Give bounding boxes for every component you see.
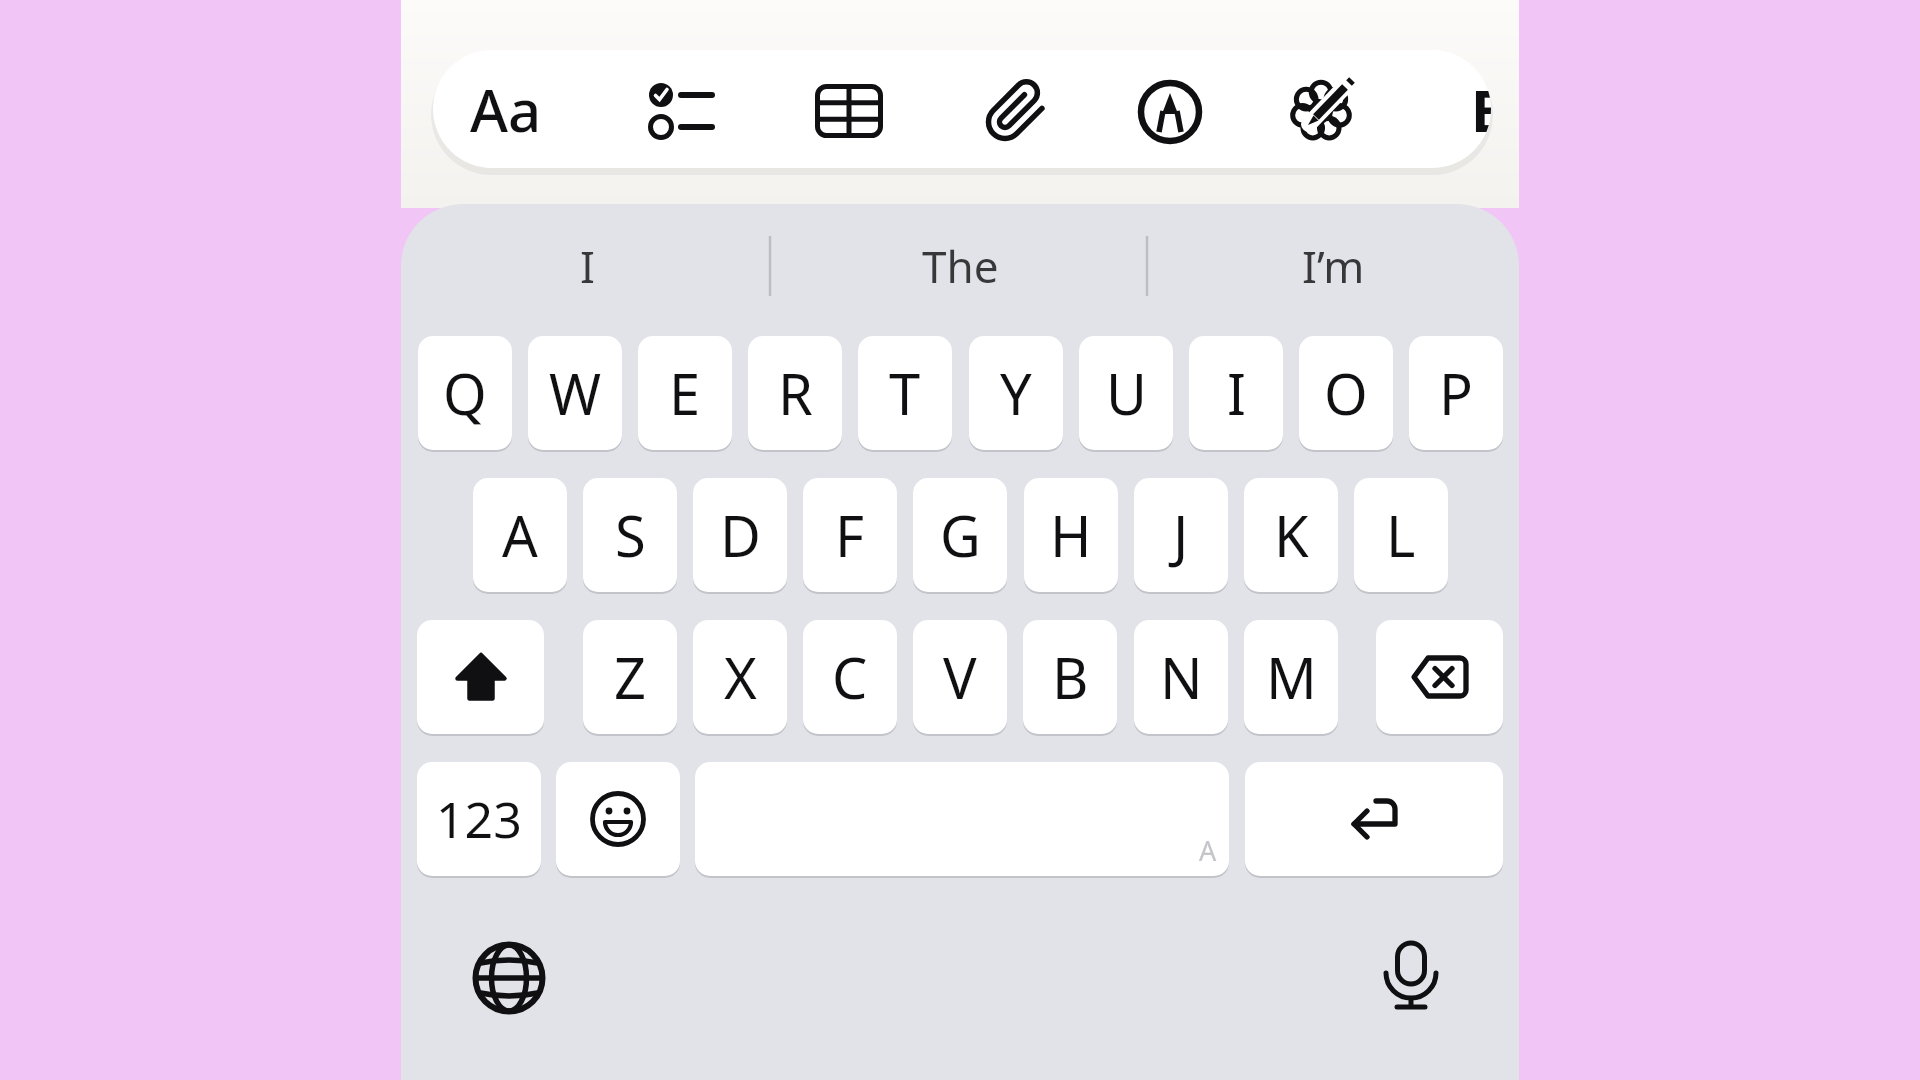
button[interactable] [1245, 762, 1503, 876]
staticText: O [1324, 355, 1368, 431]
staticText: A [502, 497, 538, 573]
button[interactable]: H [1024, 478, 1118, 592]
button[interactable]: E [638, 336, 732, 450]
staticText: C [832, 639, 868, 715]
button[interactable]: I [401, 224, 773, 308]
button[interactable] [1376, 620, 1503, 734]
button[interactable]: N [1134, 620, 1228, 734]
staticText: K [1274, 497, 1309, 573]
button[interactable] [417, 620, 544, 734]
button[interactable]: X [693, 620, 787, 734]
button[interactable]: I [1189, 336, 1283, 450]
button[interactable]: D [693, 478, 787, 592]
button[interactable]: B [1023, 620, 1117, 734]
staticText: X [724, 639, 757, 715]
staticText: T [889, 355, 921, 431]
staticText: I [580, 236, 595, 296]
button[interactable]: G [913, 478, 1007, 592]
button[interactable]: L [1354, 478, 1448, 592]
button[interactable]: C [803, 620, 897, 734]
button[interactable] [645, 80, 717, 142]
staticText: R [778, 355, 813, 431]
button[interactable]: 123 [417, 762, 541, 876]
staticText: J [1173, 497, 1189, 573]
button[interactable]: W [528, 336, 622, 450]
button[interactable] [983, 78, 1049, 144]
button[interactable]: U [1079, 336, 1173, 450]
staticText: U [1106, 355, 1147, 431]
staticText: B [1052, 639, 1089, 715]
staticText: H [1050, 497, 1092, 573]
staticText: S [615, 497, 646, 573]
staticText: D [720, 497, 761, 573]
staticText: Z [614, 639, 647, 715]
button[interactable] [695, 762, 1229, 876]
button[interactable]: Aa [433, 50, 1491, 168]
staticText: F [835, 497, 865, 573]
staticText: I’m [1302, 236, 1365, 296]
staticText: I [1227, 355, 1246, 431]
staticText: 123 [436, 785, 522, 853]
button[interactable]: O [1299, 336, 1393, 450]
staticText: The [922, 236, 999, 296]
button[interactable] [467, 936, 551, 1020]
button[interactable]: P [1409, 336, 1503, 450]
button[interactable]: The [774, 224, 1146, 308]
staticText: Q [443, 355, 487, 431]
button[interactable]: Q [418, 336, 512, 450]
button[interactable]: M [1244, 620, 1338, 734]
staticText: B [1471, 70, 1491, 149]
staticText: Aa [470, 70, 542, 149]
button[interactable]: V [913, 620, 1007, 734]
staticText: Y [1000, 355, 1032, 431]
button[interactable]: J [1134, 478, 1228, 592]
button[interactable]: Z [583, 620, 677, 734]
button[interactable] [815, 84, 883, 138]
button[interactable]: R [748, 336, 842, 450]
button[interactable] [556, 762, 680, 876]
staticText: E [669, 355, 701, 431]
button[interactable]: K [1244, 478, 1338, 592]
button[interactable] [1369, 935, 1453, 1019]
staticText: N [1160, 639, 1203, 715]
staticText: V [943, 639, 977, 715]
button[interactable]: F [803, 478, 897, 592]
button[interactable]: I’m [1147, 224, 1519, 308]
staticText: P [1439, 355, 1473, 431]
button[interactable] [1287, 73, 1359, 145]
staticText: A [1199, 832, 1217, 869]
button[interactable]: A [473, 478, 567, 592]
staticText: W [549, 355, 602, 431]
staticText: G [940, 497, 981, 573]
button[interactable] [1134, 76, 1206, 148]
button[interactable]: S [583, 478, 677, 592]
staticText: L [1386, 497, 1416, 573]
button[interactable]: Y [969, 336, 1063, 450]
button[interactable]: T [858, 336, 952, 450]
staticText: M [1266, 639, 1317, 715]
